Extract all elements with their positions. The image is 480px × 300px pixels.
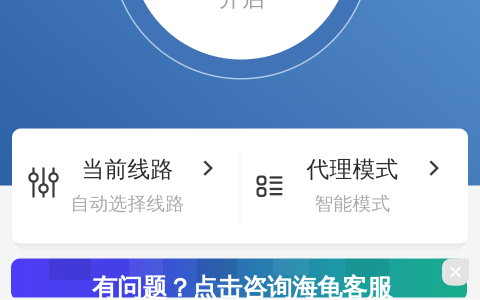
staticText: 智能模式 [314, 192, 390, 215]
staticText: 有问题？点击咨询海龟客服 [92, 272, 392, 300]
staticText: 当前线路 [81, 155, 173, 183]
button[interactable]: 当前线路 [12, 128, 239, 243]
staticText: 自动选择线路 [70, 192, 184, 215]
staticText: 代理模式 [306, 155, 398, 183]
staticText: 开启 [219, 0, 265, 12]
button[interactable]: 代理模式 [240, 128, 467, 243]
button[interactable]: 关闭 [442, 258, 469, 285]
